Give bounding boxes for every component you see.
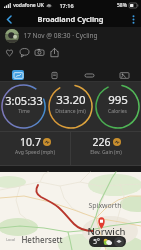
button[interactable]: Back [0, 11, 18, 27]
button[interactable]: More options [125, 11, 141, 27]
staticText: Calories [108, 108, 127, 115]
staticText: Norwich [87, 225, 126, 238]
staticText: Spixworth [88, 201, 122, 211]
staticText: vodafone UK [13, 2, 44, 9]
staticText: Broadland Cycling [37, 14, 104, 24]
button[interactable]: Details [36, 60, 71, 81]
staticText: Elev. Gain (m) [90, 149, 122, 156]
button[interactable]: Map [0, 60, 36, 81]
staticText: 17 Nov @ 08:30 · Cycling [23, 31, 98, 40]
button[interactable]: Photos [32, 45, 47, 60]
button[interactable]: Map layers [114, 237, 124, 247]
button[interactable]: Share [47, 45, 62, 60]
staticText: Time [18, 108, 30, 115]
staticText: Hethersett [21, 234, 63, 245]
staticText: 3:05:33 [5, 93, 43, 108]
button[interactable]: Segments [71, 60, 106, 81]
staticText: Local [6, 237, 15, 242]
staticText: 995 [108, 92, 128, 108]
staticText: 10.7 [20, 135, 41, 149]
button[interactable]: Photos [106, 60, 141, 81]
button[interactable]: Like [2, 45, 17, 60]
staticText: 226 [92, 135, 111, 149]
staticText: Distance (mi) [55, 108, 86, 115]
button[interactable]: Weather and map layers [89, 236, 126, 247]
staticText: 58% [117, 2, 127, 9]
staticText: 17:16 [59, 2, 74, 9]
staticText: 5° [93, 237, 100, 246]
staticText: 33.20 [56, 92, 86, 108]
staticText: Avg Speed (mph) [15, 149, 55, 156]
button[interactable]: Comment [17, 45, 32, 60]
